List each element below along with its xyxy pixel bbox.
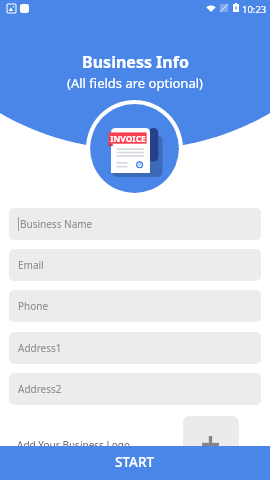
staticText: Add Your Business Logo xyxy=(17,438,130,452)
staticText: Phone xyxy=(18,299,49,313)
button[interactable]: Invoice xyxy=(86,100,183,197)
button[interactable]: Phone xyxy=(9,290,261,322)
staticText: START xyxy=(115,453,155,471)
button[interactable]: Business Name xyxy=(9,208,261,240)
staticText: Address1 xyxy=(18,341,62,355)
button[interactable]: Address2 xyxy=(9,373,261,405)
staticText: Business Name xyxy=(20,217,93,231)
staticText: INVOICE xyxy=(109,133,147,144)
staticText: Address2 xyxy=(18,382,62,396)
staticText: 10:23 xyxy=(242,3,267,16)
button[interactable]: Email xyxy=(9,249,261,281)
staticText: Email xyxy=(18,258,44,272)
staticText: Business Info xyxy=(82,51,189,73)
staticText: (All fields are optional) xyxy=(67,74,203,92)
button[interactable]: Add logo xyxy=(183,416,239,472)
button[interactable]: Address1 xyxy=(9,332,261,364)
button[interactable]: START xyxy=(0,446,270,480)
